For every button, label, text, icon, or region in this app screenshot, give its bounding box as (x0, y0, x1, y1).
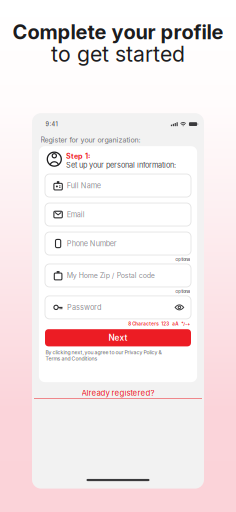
staticText: Phone Number (67, 239, 117, 248)
staticText: By clicking next, you agree to our Priva… (45, 349, 161, 362)
staticText: Already registered? (81, 388, 154, 398)
staticText: 123 (161, 321, 169, 327)
staticText: 9:41 (45, 121, 57, 127)
staticText: Set up your personal information: (66, 161, 176, 170)
button[interactable]: Phone Number (45, 232, 191, 255)
staticText: to get started (51, 41, 185, 67)
staticText: Password (67, 303, 101, 312)
staticText: Email (67, 210, 85, 219)
staticText: Optional (175, 257, 190, 262)
staticText: Full Name (67, 181, 101, 190)
staticText: aA (172, 321, 178, 327)
staticText: 8 Characters (128, 321, 158, 327)
staticText: Step 1: (66, 152, 90, 160)
staticText: Register for your organization: (41, 136, 141, 144)
button[interactable]: Full Name (45, 174, 191, 197)
staticText: My Home Zip / Postal code (67, 271, 155, 280)
staticText: */-+ (181, 321, 190, 327)
staticText: Complete your profile (12, 20, 223, 44)
button[interactable]: Password (45, 296, 191, 319)
staticText: Next (108, 333, 127, 343)
button[interactable]: Already registered? (32, 386, 204, 401)
button[interactable]: My Home Zip / Postal code (45, 264, 191, 287)
staticText: Optional (175, 289, 190, 294)
button[interactable]: Email (45, 203, 191, 226)
button[interactable]: Next (45, 329, 191, 346)
